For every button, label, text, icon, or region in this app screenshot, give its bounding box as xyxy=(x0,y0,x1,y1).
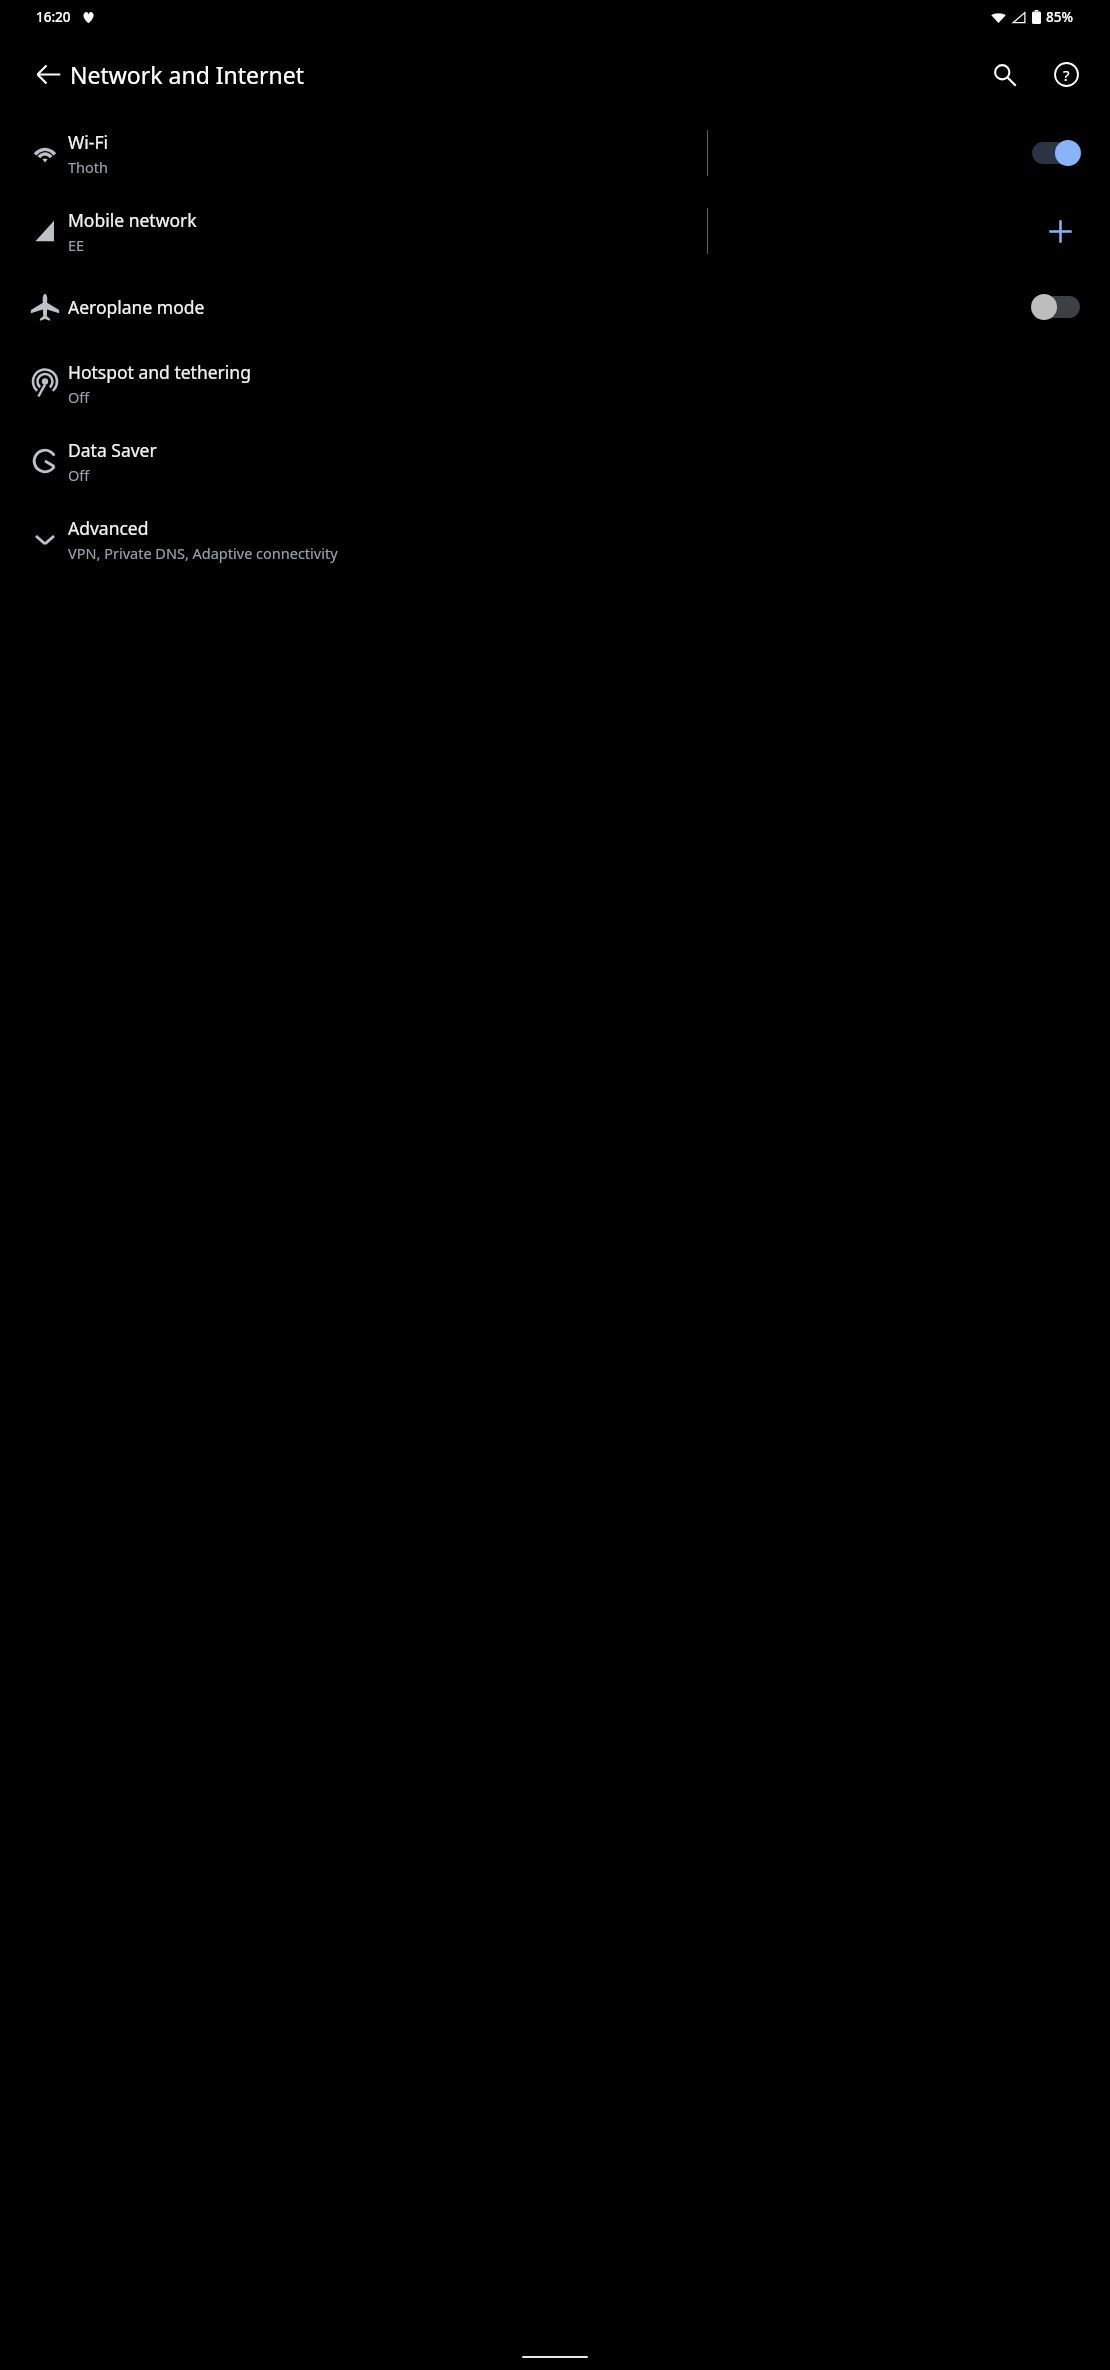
button[interactable]: Wi-Fi xyxy=(0,114,1110,192)
staticText: Network and Internet xyxy=(70,59,305,90)
staticText: EE xyxy=(68,235,85,255)
button[interactable]: Aeroplane mode xyxy=(0,270,1110,344)
staticText: VPN, Private DNS, Adaptive connectivity xyxy=(68,543,338,563)
button[interactable]: Data Saver xyxy=(0,422,1110,500)
staticText: Off xyxy=(68,387,90,407)
staticText: Mobile network xyxy=(68,208,197,232)
button[interactable]: Add network xyxy=(1034,205,1086,257)
button[interactable]: Aeroplane mode toggle xyxy=(1024,283,1088,331)
button[interactable]: Wi-Fi toggle xyxy=(1024,129,1088,177)
staticText: Advanced xyxy=(68,516,149,540)
staticText: Data Saver xyxy=(68,438,157,462)
staticText: Off xyxy=(68,465,90,485)
staticText: Wi-Fi xyxy=(68,130,109,154)
button[interactable]: Mobile network xyxy=(0,192,1110,270)
button[interactable]: Search xyxy=(978,48,1030,100)
button[interactable]: Advanced xyxy=(0,500,1110,578)
button[interactable]: Hotspot and tethering xyxy=(0,344,1110,422)
button[interactable]: Help xyxy=(1040,48,1092,100)
staticText: Thoth xyxy=(68,157,108,177)
staticText: 85% xyxy=(1046,8,1073,26)
staticText: ? xyxy=(1063,65,1070,85)
staticText: Aeroplane mode xyxy=(68,295,205,319)
button[interactable]: Back xyxy=(22,48,74,100)
staticText: Hotspot and tethering xyxy=(68,360,251,384)
staticText: 16:20 xyxy=(36,8,71,26)
